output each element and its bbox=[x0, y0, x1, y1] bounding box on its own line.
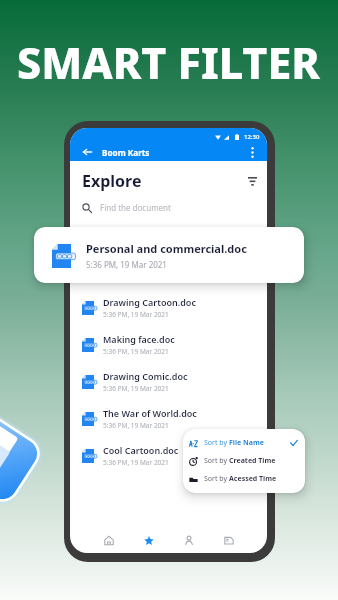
staticText: 5:36 PM, 19 Mar 2021 bbox=[103, 310, 169, 319]
button[interactable]: More options bbox=[244, 144, 261, 161]
button[interactable]: Making face.doc bbox=[70, 326, 267, 363]
button[interactable]: Cool Cartoon.doc bbox=[70, 437, 267, 474]
button[interactable]: Sort by bbox=[183, 452, 305, 470]
staticText: Sort by bbox=[204, 474, 229, 484]
button[interactable]: Sort by bbox=[183, 470, 305, 488]
staticText: Cool Cartoon.doc bbox=[103, 444, 179, 456]
button[interactable]: The War of World.doc bbox=[70, 400, 267, 437]
button[interactable]: Personal and commercial.doc bbox=[34, 227, 304, 283]
button[interactable]: Back bbox=[80, 145, 94, 159]
staticText: Created Time bbox=[229, 456, 276, 466]
button[interactable]: Home bbox=[89, 528, 129, 553]
button[interactable]: Favorites bbox=[129, 528, 169, 553]
staticText: SMART FILTER bbox=[17, 33, 320, 92]
staticText: 5:36 PM, 19 Mar 2021 bbox=[103, 347, 169, 356]
button[interactable]: Sort by bbox=[183, 434, 305, 452]
staticText: Drawing Comic.doc bbox=[103, 370, 188, 382]
staticText: Explore bbox=[82, 170, 142, 192]
button[interactable]: Drawing Comic.doc bbox=[70, 363, 267, 400]
staticText: The War of World.doc bbox=[103, 407, 197, 419]
staticText: Personal and commercial.doc bbox=[86, 241, 247, 256]
button[interactable]: Profile bbox=[169, 528, 209, 553]
staticText: 5:36 PM, 19 Mar 2021 bbox=[86, 259, 167, 270]
button[interactable]: Filter bbox=[247, 176, 257, 186]
staticText: 5:36 PM, 19 Mar 2021 bbox=[103, 421, 169, 430]
staticText: 5:36 PM, 19 Mar 2021 bbox=[103, 458, 169, 467]
staticText: Sort by bbox=[204, 456, 229, 466]
staticText: Sort by bbox=[204, 438, 229, 448]
staticText: Boom Karts bbox=[102, 147, 150, 158]
button[interactable]: Files bbox=[209, 528, 249, 553]
staticText: File Name bbox=[229, 438, 264, 448]
staticText: Find the document bbox=[100, 202, 171, 213]
staticText: Drawing Cartoon.doc bbox=[103, 296, 196, 308]
staticText: Acessed Time bbox=[229, 474, 277, 484]
staticText: 12:30 bbox=[244, 133, 260, 141]
staticText: 5:36 PM, 19 Mar 2021 bbox=[103, 384, 169, 393]
button[interactable]: Drawing Cartoon.doc bbox=[70, 289, 267, 326]
staticText: Making face.doc bbox=[103, 333, 175, 345]
